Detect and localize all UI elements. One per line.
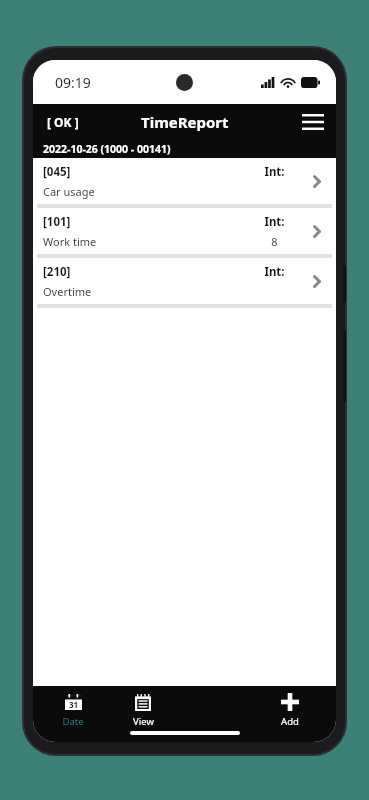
staticText: Overtime xyxy=(43,284,92,299)
staticText: Int: xyxy=(264,264,285,280)
button[interactable]: [ OK ] xyxy=(39,108,87,136)
staticText: Add xyxy=(281,715,299,728)
staticText: [210] xyxy=(43,264,71,280)
staticText: 2022-10-26 (1000 - 00141) xyxy=(43,142,171,156)
button[interactable]: [210] xyxy=(33,258,336,304)
staticText: View xyxy=(133,715,154,728)
staticText: 09:19 xyxy=(55,73,91,92)
button[interactable]: View xyxy=(117,690,169,730)
staticText: Int: xyxy=(264,164,285,180)
staticText: [ OK ] xyxy=(47,114,79,130)
staticText: TimeReport xyxy=(141,112,229,132)
staticText: Car usage xyxy=(43,184,95,199)
staticText: Int: xyxy=(264,214,285,230)
button[interactable]: 31 xyxy=(47,690,99,730)
button[interactable]: [101] xyxy=(33,208,336,254)
button[interactable]: [045] xyxy=(33,158,336,204)
staticText: Work time xyxy=(43,234,97,249)
staticText: 31 xyxy=(69,699,79,710)
staticText: 8 xyxy=(271,234,278,249)
staticText: Date xyxy=(62,715,84,728)
button[interactable]: Add xyxy=(264,690,316,730)
staticText: [101] xyxy=(43,214,71,230)
staticText: [045] xyxy=(43,164,71,180)
button[interactable]: 2022-10-26 (1000 - 00141) xyxy=(33,140,336,158)
button[interactable]: Menu xyxy=(298,107,328,137)
